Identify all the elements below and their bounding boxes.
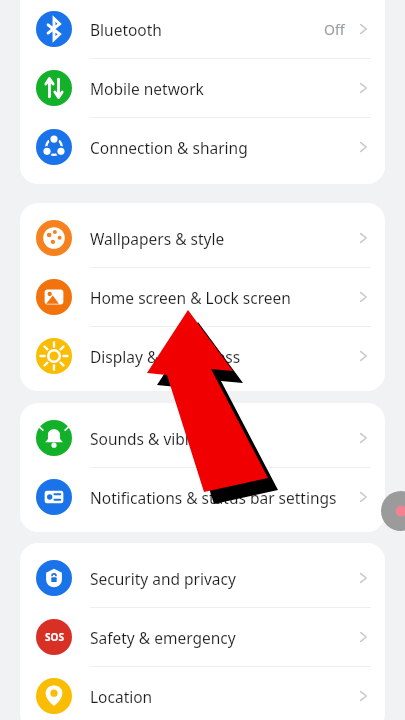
button[interactable]: Home screen & Lock screen xyxy=(20,268,385,326)
button[interactable]: SOS xyxy=(20,608,385,666)
staticText: Home screen & Lock screen xyxy=(90,287,355,308)
button[interactable]: Security and privacy xyxy=(20,549,385,607)
staticText: SOS xyxy=(45,630,64,644)
staticText: Sounds & vibration xyxy=(90,428,355,449)
button[interactable]: Display & brightness xyxy=(20,327,385,385)
staticText: Safety & emergency xyxy=(90,627,355,648)
button[interactable]: Sounds & vibration xyxy=(20,409,385,467)
button[interactable]: Mobile network xyxy=(20,59,385,117)
button[interactable]: Notifications & status bar settings xyxy=(20,468,385,526)
staticText: Notifications & status bar settings xyxy=(90,487,355,508)
staticText: Bluetooth xyxy=(90,19,324,40)
button[interactable]: Bluetooth xyxy=(20,0,385,58)
button[interactable]: Connection & sharing xyxy=(20,118,385,176)
staticText: Security and privacy xyxy=(90,568,355,589)
staticText: Mobile network xyxy=(90,78,355,99)
staticText: Wallpapers & style xyxy=(90,228,355,249)
button[interactable]: Wallpapers & style xyxy=(20,209,385,267)
staticText: Connection & sharing xyxy=(90,137,355,158)
staticText: Location xyxy=(90,686,355,707)
button[interactable]: Floating shortcut xyxy=(381,491,405,531)
staticText: Display & brightness xyxy=(90,346,355,367)
button[interactable]: Location xyxy=(20,667,385,720)
staticText: Off xyxy=(324,20,345,39)
